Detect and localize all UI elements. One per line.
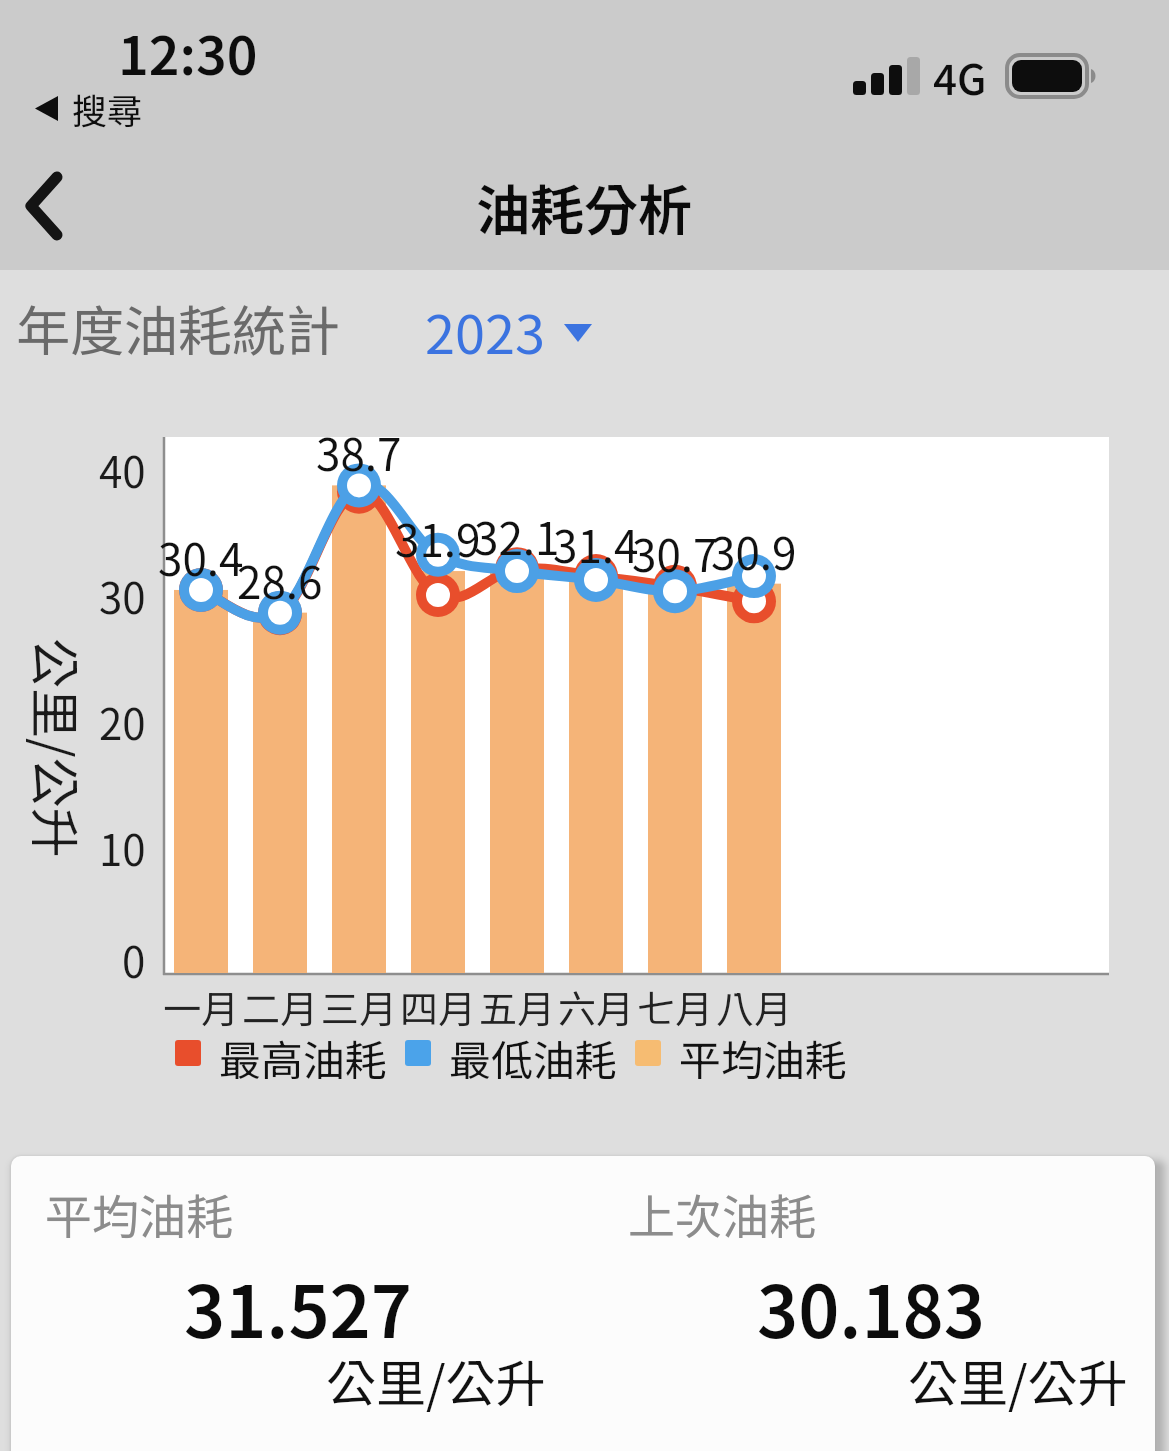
staticText: 公里/公升 (22, 638, 94, 858)
staticText: 四月 (400, 979, 477, 1033)
button[interactable]: 搜尋 (30, 80, 180, 136)
staticText: 31.4 (553, 512, 639, 572)
staticText: 31.527 (184, 1256, 412, 1359)
staticText: 28.6 (237, 548, 323, 608)
staticText: 平均油耗 (679, 1027, 848, 1079)
staticText: 油耗分析 (476, 167, 692, 245)
staticText: 2023 (425, 291, 545, 369)
staticText: 七月 (637, 979, 714, 1033)
staticText: 平均油耗 (45, 1179, 233, 1247)
staticText: 31.9 (395, 506, 481, 566)
staticText: 二月 (242, 979, 319, 1033)
staticText: 公里/公升 (326, 1344, 546, 1414)
staticText: 一月 (163, 979, 240, 1033)
staticText: 五月 (479, 979, 556, 1033)
staticText: 32.1 (474, 504, 560, 564)
staticText: 0 (122, 929, 146, 989)
staticText: 搜尋 (72, 83, 143, 134)
button[interactable] (14, 165, 94, 250)
staticText: 38.7 (316, 420, 402, 480)
staticText: 30.7 (632, 521, 718, 581)
staticText: 30 (99, 565, 146, 625)
staticText: 30.183 (757, 1256, 985, 1359)
staticText: 三月 (321, 979, 398, 1033)
staticText: 年度油耗統計 (16, 288, 340, 366)
staticText: 20 (99, 691, 146, 751)
staticText: 上次油耗 (628, 1179, 816, 1247)
button[interactable] (11, 1156, 1155, 1451)
staticText: 六月 (558, 979, 635, 1033)
staticText: 10 (99, 817, 146, 877)
staticText: 12:30 (118, 14, 258, 91)
staticText: 30.4 (158, 525, 244, 585)
staticText: 最低油耗 (449, 1027, 618, 1079)
staticText: 40 (99, 439, 146, 499)
staticText: 八月 (716, 979, 793, 1033)
staticText: 30.9 (711, 519, 797, 579)
staticText: 公里/公升 (908, 1344, 1128, 1414)
button[interactable]: 2023 (380, 287, 590, 373)
staticText: 最高油耗 (219, 1027, 388, 1079)
staticText: 4G (933, 46, 987, 107)
